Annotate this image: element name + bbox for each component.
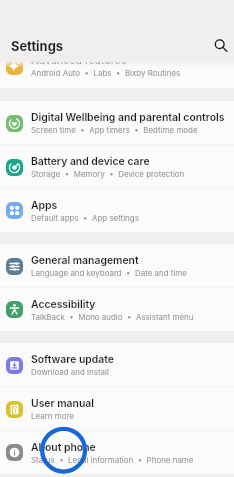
button[interactable]: About phone <box>0 431 234 474</box>
button[interactable]: General management <box>0 244 234 288</box>
button[interactable]: Advanced features <box>0 44 234 88</box>
button[interactable]: Battery and device care <box>0 145 234 189</box>
staticText: Apps <box>31 199 58 212</box>
staticText: Status • Legal information • Phone name <box>31 455 194 465</box>
staticText: User manual <box>31 397 94 410</box>
staticText: Language and keyboard • Date and time <box>31 268 187 278</box>
button[interactable]: User manual <box>0 387 234 431</box>
staticText: Battery and device care <box>31 155 150 168</box>
staticText: Settings <box>11 39 63 55</box>
staticText: About phone <box>31 441 96 454</box>
staticText: Screen time • App timers • Bedtime mode <box>31 125 198 135</box>
staticText: Default apps • App settings <box>31 213 139 223</box>
staticText: Learn more <box>31 411 74 421</box>
staticText: General management <box>31 254 139 267</box>
staticText: Storage • Memory • Device protection <box>31 169 185 179</box>
staticText: Android Auto • Labs • Bixby Routines <box>31 68 181 78</box>
staticText: TalkBack • Mono audio • Assistant menu <box>31 312 194 322</box>
button[interactable]: Digital Wellbeing and parental controls <box>0 101 234 145</box>
staticText: Digital Wellbeing and parental controls <box>31 111 225 124</box>
staticText: Accessibility <box>31 298 96 311</box>
staticText: Download and install <box>31 367 109 377</box>
button[interactable]: Software update <box>0 343 234 387</box>
button[interactable]: Apps <box>0 189 234 232</box>
button[interactable]: Search <box>206 30 234 59</box>
button[interactable]: Accessibility <box>0 288 234 331</box>
staticText: Advanced features <box>31 54 127 67</box>
staticText: Software update <box>31 353 114 366</box>
